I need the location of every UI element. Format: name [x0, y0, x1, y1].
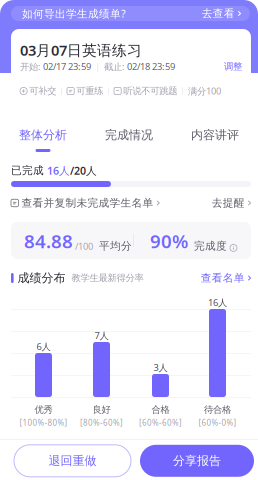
- staticText: 3人: [153, 361, 167, 374]
- button[interactable]: 退回重做: [14, 445, 131, 477]
- staticText: [100%-80%]: [19, 417, 67, 428]
- staticText: 可补交: [29, 85, 56, 97]
- button[interactable]: 查看并复制未完成学生名单: [11, 196, 160, 209]
- staticText: /20人: [70, 163, 97, 178]
- button[interactable]: 内容讲评: [172, 127, 258, 155]
- staticText: 内容讲评: [191, 128, 239, 142]
- staticText: 如何导出学生成绩单?: [22, 6, 126, 21]
- staticText: 可重练: [76, 85, 103, 97]
- staticText: 合格: [151, 404, 169, 415]
- staticText: 教学生最新得分率: [66, 272, 144, 284]
- staticText: 02/18 23:59: [127, 60, 175, 73]
- staticText: [60%-0%]: [198, 417, 236, 428]
- staticText: 平均分: [99, 239, 132, 252]
- staticText: 16人: [208, 296, 227, 309]
- staticText: 查看并复制未完成学生名单: [21, 196, 153, 209]
- staticText: 完成情况: [105, 128, 153, 142]
- button[interactable]: 调整: [224, 61, 242, 72]
- staticText: 分享报告: [173, 453, 221, 468]
- staticText: 满分100: [188, 85, 221, 97]
- staticText: 听说不可跳题: [123, 85, 177, 97]
- staticText: 16人: [47, 163, 70, 178]
- staticText: 03月07日英语练习: [20, 40, 142, 60]
- staticText: [80%-60%]: [80, 417, 123, 428]
- button[interactable]: 分享报告: [140, 445, 254, 477]
- staticText: 7人: [94, 329, 108, 342]
- staticText: [60%-60%]: [139, 417, 182, 428]
- staticText: |: [91, 60, 104, 73]
- staticText: 成绩分布: [14, 271, 66, 285]
- staticText: 已完成: [11, 164, 47, 177]
- button[interactable]: 去提醒: [212, 196, 251, 209]
- button[interactable]: 如何导出学生成绩单?: [11, 6, 250, 21]
- button[interactable]: 查看名单: [201, 271, 251, 284]
- staticText: 去查看: [202, 7, 235, 20]
- staticText: 调整: [224, 61, 242, 72]
- button[interactable]: 完成情况: [86, 127, 172, 155]
- staticText: 优秀: [34, 404, 52, 415]
- staticText: 90%: [150, 229, 188, 253]
- staticText: 整体分析: [19, 128, 67, 142]
- staticText: 良好: [92, 404, 110, 415]
- button[interactable]: 整体分析: [0, 127, 86, 155]
- staticText: 开始:: [20, 60, 43, 73]
- staticText: 待合格: [204, 404, 231, 415]
- staticText: 去提醒: [212, 196, 245, 209]
- staticText: 截止:: [104, 60, 127, 73]
- staticText: 退回重做: [48, 453, 96, 468]
- staticText: 02/17 23:59: [43, 60, 91, 73]
- staticText: 查看名单: [201, 271, 245, 284]
- staticText: /100: [75, 240, 93, 252]
- staticText: 84.88: [24, 229, 73, 253]
- staticText: 完成度: [194, 239, 227, 252]
- staticText: 6人: [36, 340, 50, 353]
